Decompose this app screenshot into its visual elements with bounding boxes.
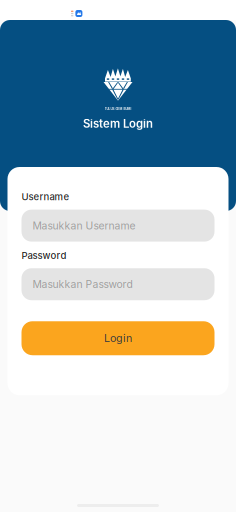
staticText: Username [21,191,69,203]
button[interactable]: Login [21,321,214,355]
button[interactable]: Masukkan Password [21,268,214,300]
staticText: Password [21,250,66,261]
staticText: Masukkan Username [32,219,135,232]
staticText: Masukkan Password [32,278,132,290]
staticText: Login [104,332,132,345]
staticText: TULUS GEM BUMI [104,107,131,111]
button[interactable]: Masukkan Username [21,210,214,242]
staticText: Sistem Login [83,117,153,130]
